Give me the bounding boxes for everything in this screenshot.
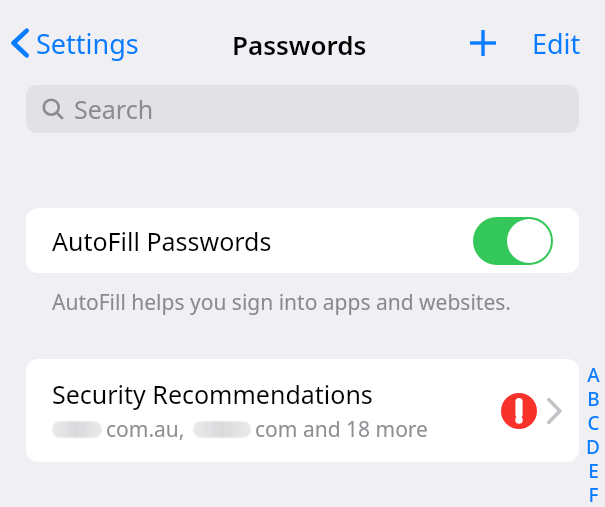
button[interactable]: Search (26, 85, 579, 133)
button[interactable]: Add password (462, 22, 504, 64)
button[interactable]: Security Recommendations (26, 359, 579, 462)
staticText: E (588, 458, 599, 482)
button[interactable]: Edit (524, 22, 589, 64)
staticText: Settings (36, 25, 139, 62)
staticText: Edit (532, 25, 581, 62)
button[interactable]: AutoFill Passwords toggle, on (473, 217, 553, 265)
button[interactable]: AutoFill Passwords (26, 208, 579, 273)
staticText: com.au, (106, 415, 185, 444)
staticText: Search (74, 92, 154, 126)
staticText: Passwords (232, 27, 367, 62)
staticText: A (587, 362, 600, 386)
button[interactable]: Settings (6, 20, 145, 66)
staticText: F (588, 482, 599, 506)
staticText: C (587, 410, 600, 434)
staticText: com and 18 more (255, 415, 428, 444)
staticText: D (586, 434, 600, 458)
staticText: AutoFill helps you sign into apps and we… (52, 288, 511, 317)
staticText: B (587, 386, 600, 410)
staticText: Security Recommendations (52, 377, 373, 411)
button[interactable]: Section index (583, 362, 603, 507)
staticText: AutoFill Passwords (52, 224, 272, 258)
other: Security alert (501, 393, 537, 429)
